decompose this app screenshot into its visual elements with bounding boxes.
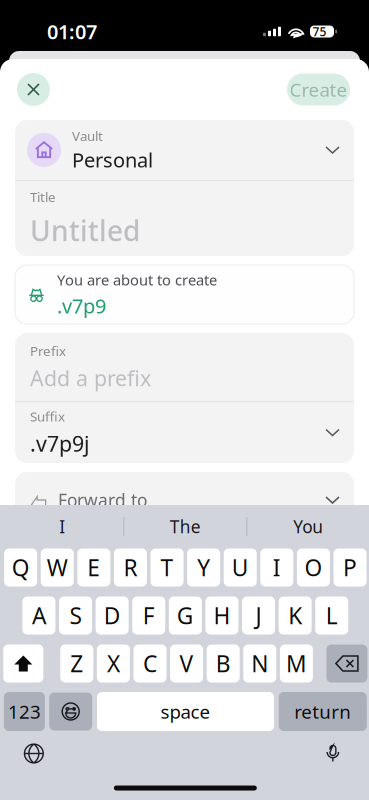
button[interactable]: return <box>279 692 367 731</box>
staticText: J <box>256 600 262 630</box>
staticText: W <box>47 552 68 582</box>
button[interactable]: Q <box>4 548 37 586</box>
staticText: R <box>123 552 137 582</box>
staticText: O <box>304 552 322 582</box>
button[interactable]: K <box>279 596 312 634</box>
button[interactable]: P <box>334 548 367 586</box>
staticText: 75 <box>312 23 326 39</box>
staticText: The <box>170 515 201 538</box>
button[interactable]: Y <box>187 548 220 586</box>
button[interactable]: U <box>224 548 257 586</box>
staticText: N <box>251 648 268 678</box>
staticText: A <box>32 600 46 630</box>
staticText: C <box>143 648 157 678</box>
staticText: You are about to create <box>57 270 217 289</box>
button[interactable]: Delete <box>326 644 367 682</box>
staticText: You <box>293 515 323 538</box>
button[interactable]: R <box>114 548 147 586</box>
staticText: M <box>286 648 307 678</box>
button[interactable]: C <box>133 644 166 682</box>
staticText: I <box>59 515 65 538</box>
button[interactable]: Suffix <box>15 402 354 463</box>
button[interactable]: Vault <box>15 120 354 180</box>
staticText: K <box>288 600 302 630</box>
staticText: 01:07 <box>47 18 97 45</box>
button[interactable]: You <box>247 505 369 547</box>
button[interactable]: D <box>96 596 129 634</box>
button[interactable]: 123 <box>4 692 45 731</box>
staticText: E <box>87 552 100 582</box>
staticText: Z <box>70 648 83 678</box>
button[interactable]: The <box>124 505 246 547</box>
staticText: Personal <box>72 147 153 173</box>
staticText: Prefix <box>30 342 66 360</box>
button[interactable]: space <box>97 692 274 731</box>
button[interactable]: Z <box>60 644 93 682</box>
button[interactable]: W <box>41 548 74 586</box>
staticText: S <box>70 600 82 630</box>
staticText: D <box>104 600 121 630</box>
staticText: Vault <box>72 127 103 145</box>
button[interactable]: E <box>77 548 110 586</box>
button[interactable]: N <box>243 644 276 682</box>
button[interactable]: I <box>260 548 293 586</box>
button[interactable]: S <box>59 596 92 634</box>
staticText: P <box>343 552 357 582</box>
button[interactable]: B <box>207 644 240 682</box>
staticText: G <box>177 600 194 630</box>
button[interactable]: H <box>205 596 238 634</box>
staticText: Title <box>30 188 56 206</box>
button[interactable]: G <box>169 596 202 634</box>
button[interactable]: A <box>22 596 55 634</box>
staticText: .v7p9j <box>30 429 90 457</box>
button[interactable]: X <box>97 644 130 682</box>
button[interactable]: Create <box>287 73 350 105</box>
button[interactable]: M <box>280 644 313 682</box>
staticText: H <box>213 600 230 630</box>
button[interactable]: Next keyboard <box>13 736 55 770</box>
button[interactable]: T <box>151 548 184 586</box>
staticText: return <box>294 699 351 724</box>
staticText: V <box>180 648 194 678</box>
button[interactable]: O <box>297 548 330 586</box>
button[interactable]: J <box>242 596 275 634</box>
staticText: Forward to <box>58 488 147 511</box>
staticText: .v7p9 <box>57 292 106 319</box>
staticText: L <box>326 600 338 630</box>
staticText: Suffix <box>30 407 65 425</box>
staticText: X <box>107 648 120 678</box>
staticText: space <box>160 699 210 724</box>
staticText: 123 <box>8 699 41 724</box>
staticText: U <box>232 552 249 582</box>
button[interactable]: Shift <box>3 644 43 682</box>
staticText: B <box>216 648 231 678</box>
button[interactable]: I <box>1 505 123 547</box>
button[interactable]: F <box>132 596 165 634</box>
button[interactable]: V <box>170 644 203 682</box>
staticText: Add a prefix <box>30 364 151 392</box>
staticText: F <box>143 600 155 630</box>
staticText: Y <box>197 552 210 582</box>
button[interactable]: L <box>315 596 348 634</box>
button[interactable]: You are about to create <box>15 265 354 324</box>
button[interactable]: Dictation <box>312 736 354 770</box>
button[interactable]: Emoji <box>49 692 92 730</box>
button[interactable]: Title <box>15 181 354 256</box>
staticText: Untitled <box>30 212 140 249</box>
staticText: I <box>273 552 281 582</box>
staticText: T <box>161 552 174 582</box>
staticText: Q <box>12 552 30 582</box>
staticText: Create <box>289 77 347 102</box>
button[interactable]: Close <box>17 73 50 106</box>
button[interactable]: Prefix <box>15 333 354 401</box>
